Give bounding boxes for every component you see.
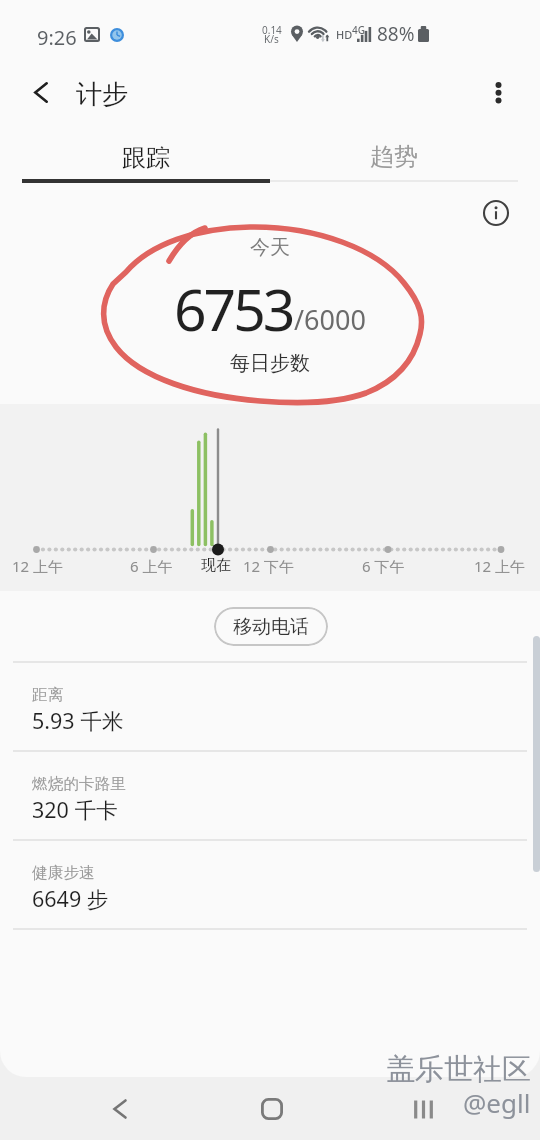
staticText: 健康步速: [32, 863, 95, 883]
button[interactable]: Recent apps: [399, 1085, 447, 1133]
staticText: 盖乐世社区: [386, 1051, 531, 1088]
staticText: 4G: [352, 23, 365, 37]
staticText: 9:26: [37, 24, 77, 51]
staticText: 6753: [174, 270, 293, 348]
staticText: 320 千卡: [32, 795, 118, 824]
button[interactable]: Back: [96, 1085, 144, 1133]
staticText: K/s: [264, 32, 279, 46]
staticText: @egll: [463, 1085, 531, 1120]
staticText: 12 上午: [474, 556, 526, 576]
staticText: 跟踪: [122, 143, 170, 173]
staticText: 6 上午: [130, 556, 173, 576]
button[interactable]: 趋势: [270, 128, 518, 182]
button[interactable]: 健康步速: [0, 841, 540, 928]
staticText: 计步: [76, 78, 128, 111]
button[interactable]: 移动电话: [214, 607, 328, 646]
staticText: 0.14: [262, 23, 282, 37]
staticText: 5.93 千米: [32, 706, 124, 735]
button[interactable]: More options: [473, 68, 523, 118]
button[interactable]: 距离: [0, 663, 540, 750]
button[interactable]: 燃烧的卡路里: [0, 752, 540, 839]
staticText: 现在: [201, 556, 231, 575]
staticText: 今天: [250, 235, 290, 260]
button[interactable]: Back: [0, 62, 540, 128]
staticText: 12 上午: [12, 556, 64, 576]
staticText: 6 下午: [362, 556, 405, 576]
button[interactable]: Home: [248, 1085, 296, 1133]
staticText: 6649 步: [32, 884, 109, 913]
button[interactable]: Information: [474, 191, 518, 235]
button[interactable]: 跟踪: [22, 128, 270, 182]
staticText: 距离: [32, 685, 64, 705]
staticText: 移动电话: [233, 615, 309, 639]
staticText: 88%: [377, 21, 415, 47]
other: Back: [34, 82, 48, 103]
staticText: 每日步数: [230, 351, 310, 376]
staticText: 12 下午: [243, 556, 295, 576]
staticText: /6000: [294, 301, 366, 338]
staticText: HD: [336, 27, 353, 42]
staticText: 趋势: [370, 142, 418, 172]
staticText: 燃烧的卡路里: [32, 774, 127, 794]
